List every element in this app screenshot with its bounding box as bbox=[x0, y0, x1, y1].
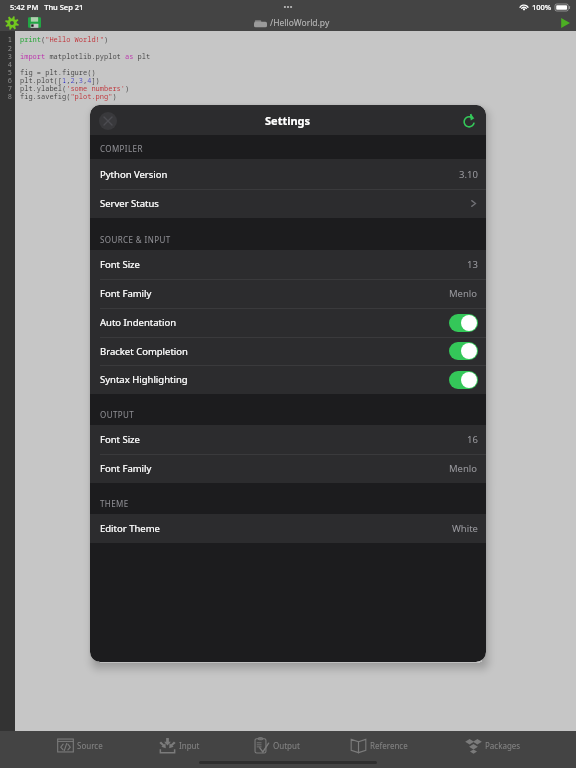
staticText: Input bbox=[179, 740, 200, 751]
button[interactable]: Save bbox=[27, 15, 42, 30]
staticText: COMPILER bbox=[100, 143, 143, 154]
button[interactable]: Server Status bbox=[90, 189, 486, 218]
staticText: 100% bbox=[532, 2, 552, 12]
staticText: White bbox=[452, 522, 478, 535]
staticText: 13 bbox=[467, 258, 478, 271]
staticText: print("Hello World!") import matplotlib.… bbox=[20, 35, 151, 101]
staticText: Font Family bbox=[100, 287, 152, 300]
button[interactable]: Font Family bbox=[90, 454, 486, 483]
staticText: Output bbox=[273, 740, 300, 751]
button[interactable]: Syntax Highlighting toggle bbox=[449, 371, 478, 389]
staticText: Packages bbox=[485, 740, 521, 751]
button[interactable]: Source bbox=[55, 735, 105, 756]
staticText: Font Size bbox=[100, 433, 140, 446]
staticText: SOURCE & INPUT bbox=[100, 234, 171, 245]
staticText: Source bbox=[77, 740, 103, 751]
staticText: Auto Indentation bbox=[100, 316, 177, 329]
button[interactable]: Input bbox=[157, 735, 202, 756]
button[interactable]: Packages bbox=[463, 735, 523, 756]
staticText: Font Family bbox=[100, 462, 152, 475]
button[interactable]: Settings bbox=[4, 15, 19, 30]
button[interactable]: Close bbox=[99, 112, 117, 130]
staticText: 16 bbox=[467, 433, 478, 446]
staticText: Bracket Completion bbox=[100, 345, 188, 358]
staticText: 1 2 3 4 5 6 7 8 bbox=[7, 35, 12, 101]
staticText: 5:42 PM Thu Sep 21 bbox=[10, 2, 84, 12]
button[interactable]: Font Size bbox=[90, 250, 486, 279]
staticText: Settings bbox=[265, 113, 311, 128]
staticText: OUTPUT bbox=[100, 409, 135, 420]
staticText: Python Version bbox=[100, 168, 168, 181]
button[interactable]: Output bbox=[251, 735, 302, 756]
button[interactable]: Reference bbox=[348, 735, 410, 756]
staticText: Reference bbox=[370, 740, 408, 751]
staticText: THEME bbox=[100, 498, 129, 509]
button[interactable]: Python Version bbox=[90, 159, 486, 189]
staticText: Menlo bbox=[449, 462, 478, 475]
button[interactable]: Auto Indentation toggle bbox=[449, 314, 478, 332]
button[interactable]: Auto Indentation bbox=[90, 308, 486, 337]
button[interactable]: Refresh bbox=[461, 112, 479, 130]
staticText: 3.10 bbox=[459, 168, 478, 181]
button[interactable]: Editor Theme bbox=[90, 514, 486, 543]
staticText: Editor Theme bbox=[100, 522, 160, 535]
button[interactable]: Bracket Completion toggle bbox=[449, 342, 478, 360]
button[interactable]: Bracket Completion bbox=[90, 337, 486, 365]
staticText: /HelloWorld.py bbox=[270, 17, 330, 29]
button[interactable]: Font Family bbox=[90, 279, 486, 308]
staticText: Syntax Highlighting bbox=[100, 373, 188, 386]
staticText: Font Size bbox=[100, 258, 140, 271]
button[interactable]: Syntax Highlighting bbox=[90, 365, 486, 394]
button[interactable]: Font Size bbox=[90, 425, 486, 454]
staticText: Menlo bbox=[449, 287, 478, 300]
staticText: Server Status bbox=[100, 197, 159, 210]
button[interactable]: Run bbox=[558, 16, 572, 30]
